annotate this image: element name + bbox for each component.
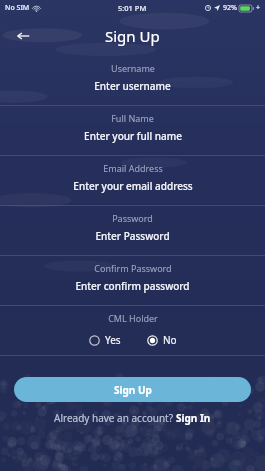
staticText: Username (111, 62, 155, 74)
staticText: Enter your full name (84, 129, 182, 143)
staticText: Sign Up (105, 26, 160, 46)
staticText: Full Name (111, 112, 154, 124)
staticText: Enter confirm password (75, 279, 190, 293)
staticText: Enter your email address (73, 179, 193, 193)
staticText: Email Address (103, 162, 163, 174)
staticText: No (163, 333, 177, 347)
staticText: No SIM (5, 3, 30, 13)
staticText: CML Holder (108, 312, 158, 324)
staticText: 92% (223, 3, 237, 13)
button[interactable]: Enter confirm password (0, 279, 265, 305)
staticText: 5:01 PM (118, 3, 147, 13)
staticText: Yes (105, 333, 121, 347)
button[interactable]: No (145, 331, 179, 349)
button[interactable]: Enter username (0, 79, 265, 105)
button[interactable]: Enter your email address (0, 179, 265, 205)
staticText: + (256, 3, 261, 13)
staticText: Sign In (176, 411, 211, 425)
button[interactable]: Sign Up (14, 377, 251, 402)
staticText: Sign Up (114, 383, 152, 397)
button[interactable]: Already have an account? (0, 411, 265, 425)
button[interactable]: Enter your full name (0, 129, 265, 155)
button[interactable]: Back (12, 25, 34, 47)
staticText: Enter username (94, 79, 171, 93)
button[interactable]: Enter Password (0, 229, 265, 255)
staticText: Confirm Password (94, 262, 172, 274)
staticText: Already have an account? (54, 411, 176, 425)
staticText: Enter Password (95, 229, 170, 243)
staticText: Password (112, 212, 153, 224)
button[interactable]: Yes (87, 331, 123, 349)
